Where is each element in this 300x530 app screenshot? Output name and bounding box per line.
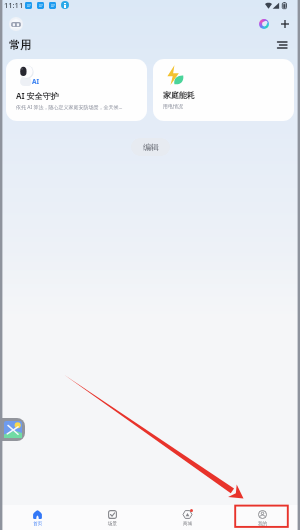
staticText: 家庭能耗 xyxy=(163,90,195,100)
staticText: 商城 xyxy=(183,521,193,527)
staticText: AI 安全守护 xyxy=(16,90,59,101)
staticText: 编辑 xyxy=(143,142,159,152)
staticText: 我的 xyxy=(258,521,268,527)
button[interactable]: Screenshot preview xyxy=(0,418,25,441)
button[interactable]: AI assistant xyxy=(257,17,271,31)
staticText: 首页 xyxy=(33,521,43,527)
button[interactable]: Add xyxy=(278,17,292,31)
button[interactable]: 家庭能耗 xyxy=(153,59,294,121)
staticText: 依托 AI 算法，随心定义家庭安防场景，全天候… xyxy=(16,104,123,111)
staticText: 常用 xyxy=(9,38,31,52)
button[interactable]: 编辑 xyxy=(131,138,170,156)
button[interactable]: 场景 xyxy=(75,505,150,530)
button[interactable]: Menu xyxy=(274,37,290,53)
button[interactable]: 商城 xyxy=(150,505,225,530)
staticText: AI xyxy=(32,77,40,86)
button[interactable]: Profile xyxy=(9,17,23,31)
button[interactable]: 我的 xyxy=(225,505,300,530)
button[interactable]: 首页 xyxy=(0,505,75,530)
button[interactable]: AI xyxy=(6,59,147,121)
staticText: 用电情况 xyxy=(163,103,183,109)
staticText: 场景 xyxy=(108,521,118,527)
staticText: 11:11 xyxy=(4,0,24,10)
